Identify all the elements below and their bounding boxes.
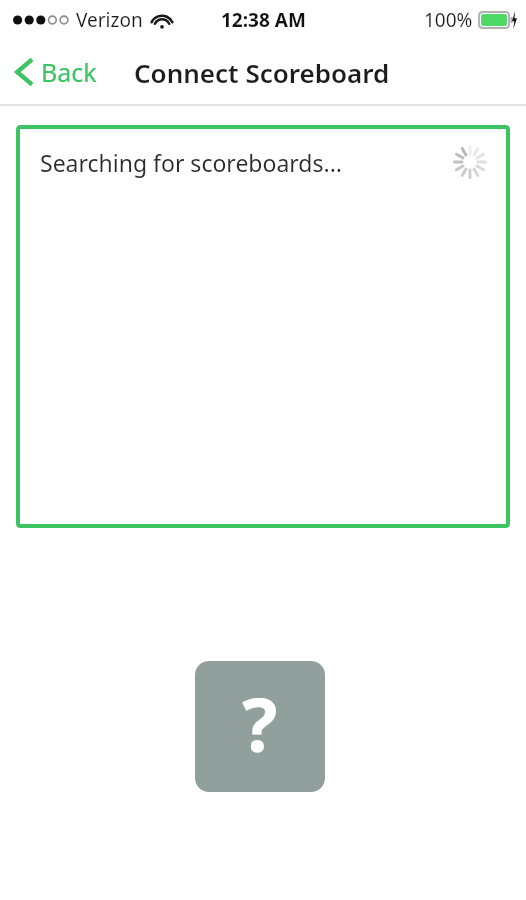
staticText: ? xyxy=(242,673,278,774)
staticText: 100% xyxy=(424,7,473,33)
staticText: Searching for scoreboards... xyxy=(40,147,343,178)
button[interactable]: Back xyxy=(0,49,107,95)
staticText: Connect Scoreboard xyxy=(134,55,390,90)
staticText: 12:38 AM xyxy=(221,7,306,33)
staticText: Verizon xyxy=(76,7,143,33)
button[interactable]: Searching for scoreboards... xyxy=(16,125,510,199)
staticText: Back xyxy=(41,55,97,89)
other: Loading xyxy=(453,145,487,179)
button[interactable]: Help xyxy=(195,661,325,792)
